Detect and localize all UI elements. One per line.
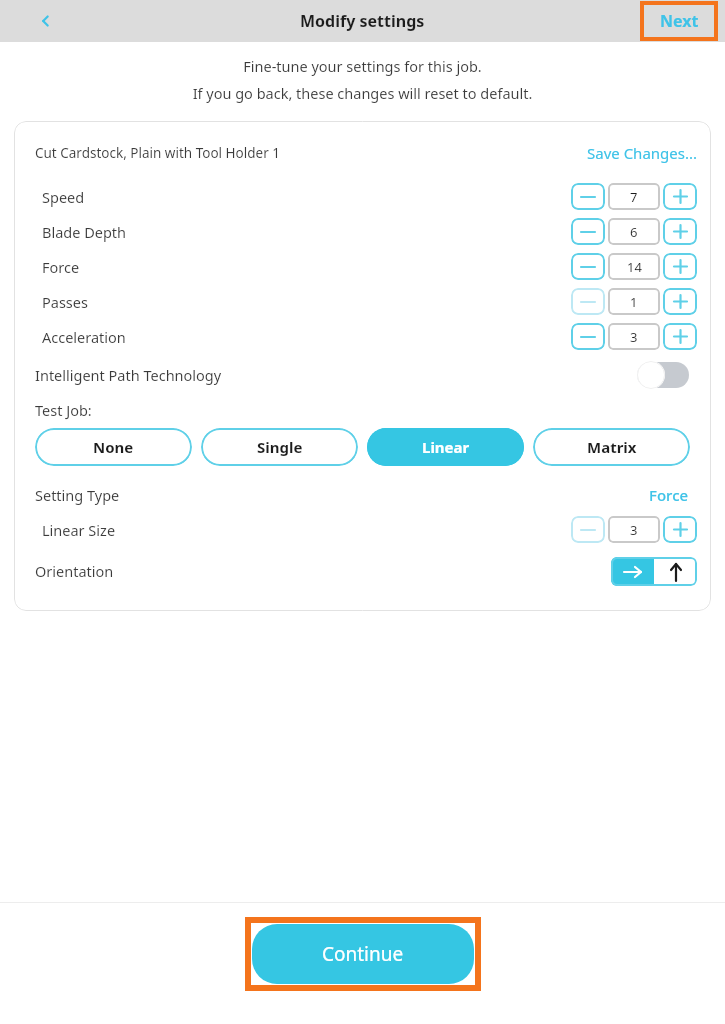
staticText: None	[93, 437, 134, 457]
staticText: Acceleration	[42, 327, 126, 347]
staticText: Intelligent Path Technology	[35, 365, 222, 385]
staticText: Continue	[322, 941, 404, 967]
button[interactable]: Force	[649, 485, 689, 505]
button[interactable]: Increase	[663, 218, 697, 245]
button[interactable]: Next	[644, 5, 714, 37]
staticText: Linear Size	[42, 520, 116, 540]
button[interactable]: Decrease	[571, 183, 605, 210]
button[interactable]: Decrease	[571, 253, 605, 280]
staticText: Matrix	[587, 437, 637, 457]
button[interactable]: Matrix	[533, 428, 690, 466]
staticText: Save Changes...	[587, 143, 697, 163]
staticText: 3	[630, 328, 638, 346]
button[interactable]: None	[35, 428, 192, 466]
staticText: Force	[649, 485, 689, 505]
staticText: 14	[627, 258, 642, 276]
staticText: Orientation	[35, 561, 114, 581]
button[interactable]: Decrease	[571, 323, 605, 350]
staticText: 7	[630, 188, 638, 206]
staticText: Blade Depth	[42, 222, 127, 242]
button[interactable]: Vertical orientation	[654, 557, 697, 586]
staticText: Fine-tune your settings for this job.	[0, 56, 725, 76]
button[interactable]: Horizontal orientation	[611, 557, 654, 586]
staticText: Force	[42, 257, 80, 277]
staticText: 1	[630, 293, 638, 311]
button[interactable]: Increase	[663, 323, 697, 350]
button[interactable]: Single	[201, 428, 358, 466]
button[interactable]: Increase	[663, 288, 697, 315]
button[interactable]: Increase	[663, 183, 697, 210]
staticText: Test Job:	[35, 400, 92, 420]
staticText: Speed	[42, 187, 85, 207]
button[interactable]: Intelligent Path Technology toggle	[637, 361, 689, 389]
button[interactable]: Back	[30, 5, 62, 37]
staticText: Setting Type	[35, 485, 120, 505]
button[interactable]: Continue	[252, 924, 474, 984]
staticText: Next	[660, 10, 699, 32]
staticText: Modify settings	[300, 10, 425, 32]
staticText: 6	[630, 223, 638, 241]
button[interactable]: Decrease	[571, 288, 605, 315]
staticText: If you go back, these changes will reset…	[0, 83, 725, 103]
button[interactable]: Increase	[663, 516, 697, 543]
button[interactable]: Decrease	[571, 218, 605, 245]
staticText: Passes	[42, 292, 88, 312]
staticText: 3	[630, 521, 638, 539]
button[interactable]: Save Changes...	[587, 143, 697, 163]
staticText: Linear	[422, 437, 470, 457]
staticText: Single	[257, 437, 303, 457]
button[interactable]: Linear	[367, 428, 524, 466]
staticText: Cut Cardstock, Plain with Tool Holder 1	[35, 144, 280, 162]
button[interactable]: Decrease	[571, 516, 605, 543]
button[interactable]: Increase	[663, 253, 697, 280]
